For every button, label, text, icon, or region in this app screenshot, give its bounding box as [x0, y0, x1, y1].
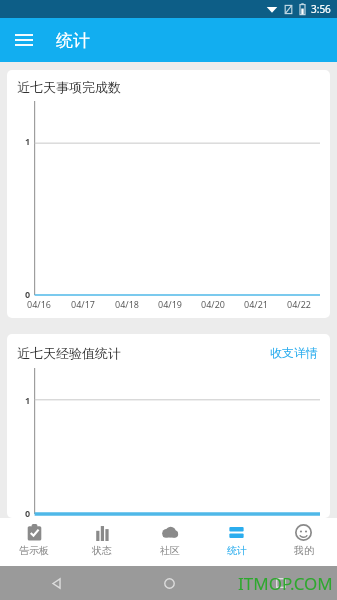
staticText: 0 [25, 288, 31, 300]
staticText: 1 [25, 135, 31, 147]
button[interactable]: 收支详情 [268, 343, 320, 362]
button[interactable]: 近七天事项完成数 [7, 70, 330, 318]
staticText: 近七天经验值统计 [17, 345, 121, 361]
button[interactable]: Back [0, 566, 112, 600]
button[interactable]: 社区 [136, 518, 203, 566]
staticText: 收支详情 [270, 345, 318, 360]
button[interactable]: 统计 [203, 518, 270, 566]
button[interactable]: Home [113, 566, 225, 600]
staticText: 状态 [92, 544, 112, 557]
staticText: 04/16 [27, 298, 51, 310]
staticText: 04/21 [244, 298, 268, 310]
staticText: 社区 [160, 544, 180, 557]
staticText: 04/20 [201, 298, 225, 310]
staticText: 04/18 [115, 298, 139, 310]
button[interactable]: 状态 [68, 518, 136, 566]
staticText: 1 [25, 394, 31, 406]
staticText: 统计 [227, 544, 247, 557]
staticText: 统计 [56, 30, 90, 51]
button[interactable]: 告示板 [0, 518, 68, 566]
button[interactable]: Recent apps [225, 566, 337, 600]
staticText: 04/19 [158, 298, 182, 310]
staticText: 我的 [294, 544, 314, 557]
button[interactable]: 近七天经验值统计 [7, 334, 330, 518]
staticText: 0 [25, 507, 31, 518]
staticText: 近七天事项完成数 [17, 79, 121, 95]
staticText: 告示板 [19, 544, 49, 557]
button[interactable]: Open navigation menu [6, 22, 42, 58]
staticText: 04/17 [71, 298, 95, 310]
staticText: 3:56 [311, 2, 331, 16]
staticText: 04/22 [287, 298, 311, 310]
button[interactable]: 我的 [270, 518, 337, 566]
staticText: ITMOP.COM [238, 572, 333, 595]
